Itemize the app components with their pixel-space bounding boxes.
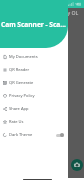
button[interactable]: Rate Us <box>0 115 68 128</box>
button[interactable]: My Documents <box>0 50 68 63</box>
staticText: Cam Scanner - Sca... <box>1 20 66 29</box>
staticText: Privacy Policy <box>9 93 35 99</box>
staticText: Dark Theme <box>9 132 33 138</box>
button[interactable]: Share App <box>0 102 68 115</box>
button[interactable]: Scan <box>71 159 83 171</box>
staticText: My Documents <box>9 54 38 60</box>
staticText: My Copy OL <box>49 9 79 16</box>
button[interactable]: Dark theme toggle <box>56 132 64 138</box>
button[interactable]: Dark Theme <box>0 128 68 141</box>
button[interactable]: QR Generate <box>0 76 68 89</box>
staticText: QR Generate <box>9 80 34 86</box>
staticText: Rate Us <box>9 119 24 125</box>
staticText: Share App <box>9 106 29 112</box>
staticText: QR Reader <box>9 67 30 73</box>
button[interactable]: QR Reader <box>0 63 68 76</box>
button[interactable]: Privacy Policy <box>0 89 68 102</box>
